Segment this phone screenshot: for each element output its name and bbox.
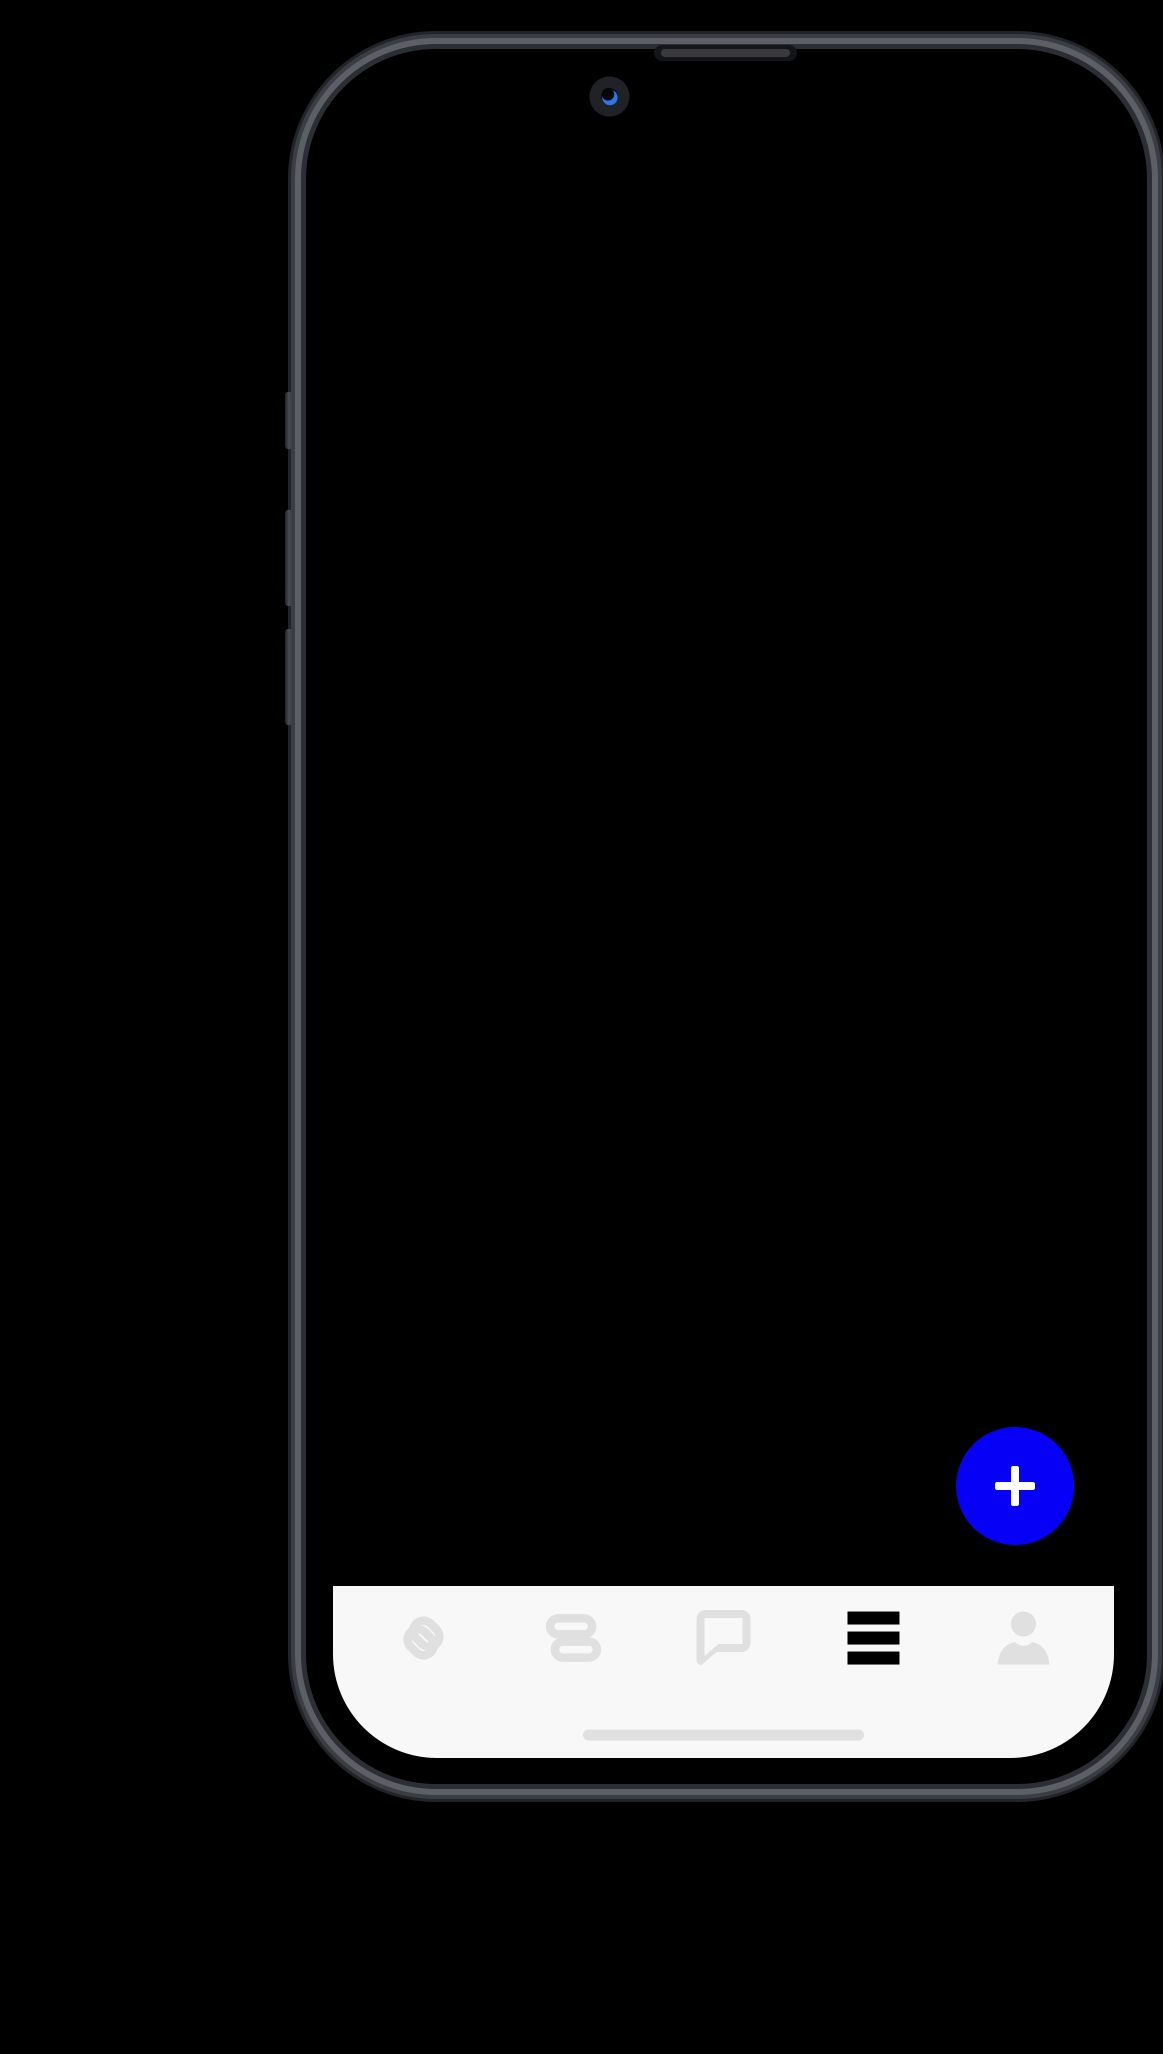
button[interactable]: Home: [348, 1590, 498, 1686]
button[interactable]: Menu: [798, 1590, 948, 1686]
button[interactable]: Discover: [498, 1590, 648, 1686]
button[interactable]: Profile: [948, 1590, 1098, 1686]
button[interactable]: Create new: [956, 1427, 1074, 1545]
button[interactable]: Messages: [648, 1590, 798, 1686]
